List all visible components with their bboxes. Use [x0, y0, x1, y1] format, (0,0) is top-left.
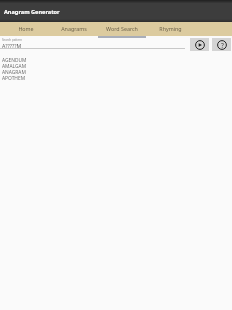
- staticText: Rhyming: [159, 25, 182, 32]
- staticText: AGENDUM: [2, 57, 27, 63]
- staticText: Anagrams: [61, 25, 87, 32]
- button[interactable]: Anagrams: [50, 22, 98, 36]
- button[interactable]: AMALGAM: [2, 63, 232, 69]
- staticText: A?????M: [2, 42, 22, 49]
- staticText: AMALGAM: [2, 63, 27, 69]
- button[interactable]: Help: [212, 38, 231, 51]
- staticText: Anagram Generator: [4, 8, 60, 16]
- staticText: ANAGRAM: [2, 69, 26, 75]
- button[interactable]: Word Search: [98, 22, 146, 36]
- staticText: Home: [18, 25, 34, 32]
- button[interactable]: APOTHEM: [2, 75, 232, 81]
- button[interactable]: Search: [190, 38, 209, 51]
- staticText: Search pattern: [2, 38, 22, 42]
- button[interactable]: Home: [2, 22, 50, 36]
- button[interactable]: ANAGRAM: [2, 69, 232, 75]
- staticText: Word Search: [106, 25, 138, 32]
- staticText: ?: [221, 41, 224, 50]
- staticText: APOTHEM: [2, 75, 26, 81]
- button[interactable]: Rhyming: [146, 22, 194, 36]
- button[interactable]: AGENDUM: [2, 57, 232, 63]
